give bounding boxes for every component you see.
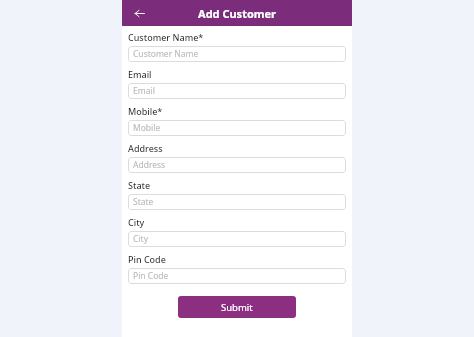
staticText: Customer Name — [133, 48, 199, 60]
staticText: Pin Code — [133, 270, 169, 282]
staticText: Submit — [221, 301, 253, 314]
staticText: State — [133, 196, 154, 208]
staticText: State — [128, 179, 151, 191]
button[interactable]: Pin Code — [128, 268, 346, 284]
staticText: Address — [128, 142, 163, 154]
button[interactable]: Back — [130, 4, 148, 22]
button[interactable]: Email — [128, 83, 346, 99]
staticText: City — [128, 216, 145, 228]
staticText: Email — [133, 85, 155, 97]
button[interactable]: Address — [128, 157, 346, 173]
staticText: Mobile — [133, 122, 161, 134]
staticText: City — [133, 233, 148, 245]
staticText: Address — [133, 159, 166, 171]
button[interactable]: City — [128, 231, 346, 247]
button[interactable]: State — [128, 194, 346, 210]
button[interactable]: Mobile — [128, 120, 346, 136]
staticText: Add Customer — [198, 6, 276, 21]
button[interactable]: Customer Name — [128, 46, 346, 62]
staticText: Pin Code — [128, 253, 166, 265]
staticText: Mobile* — [128, 105, 163, 117]
button[interactable]: Submit — [178, 296, 296, 318]
staticText: Email — [128, 68, 152, 80]
staticText: Customer Name* — [128, 31, 204, 43]
